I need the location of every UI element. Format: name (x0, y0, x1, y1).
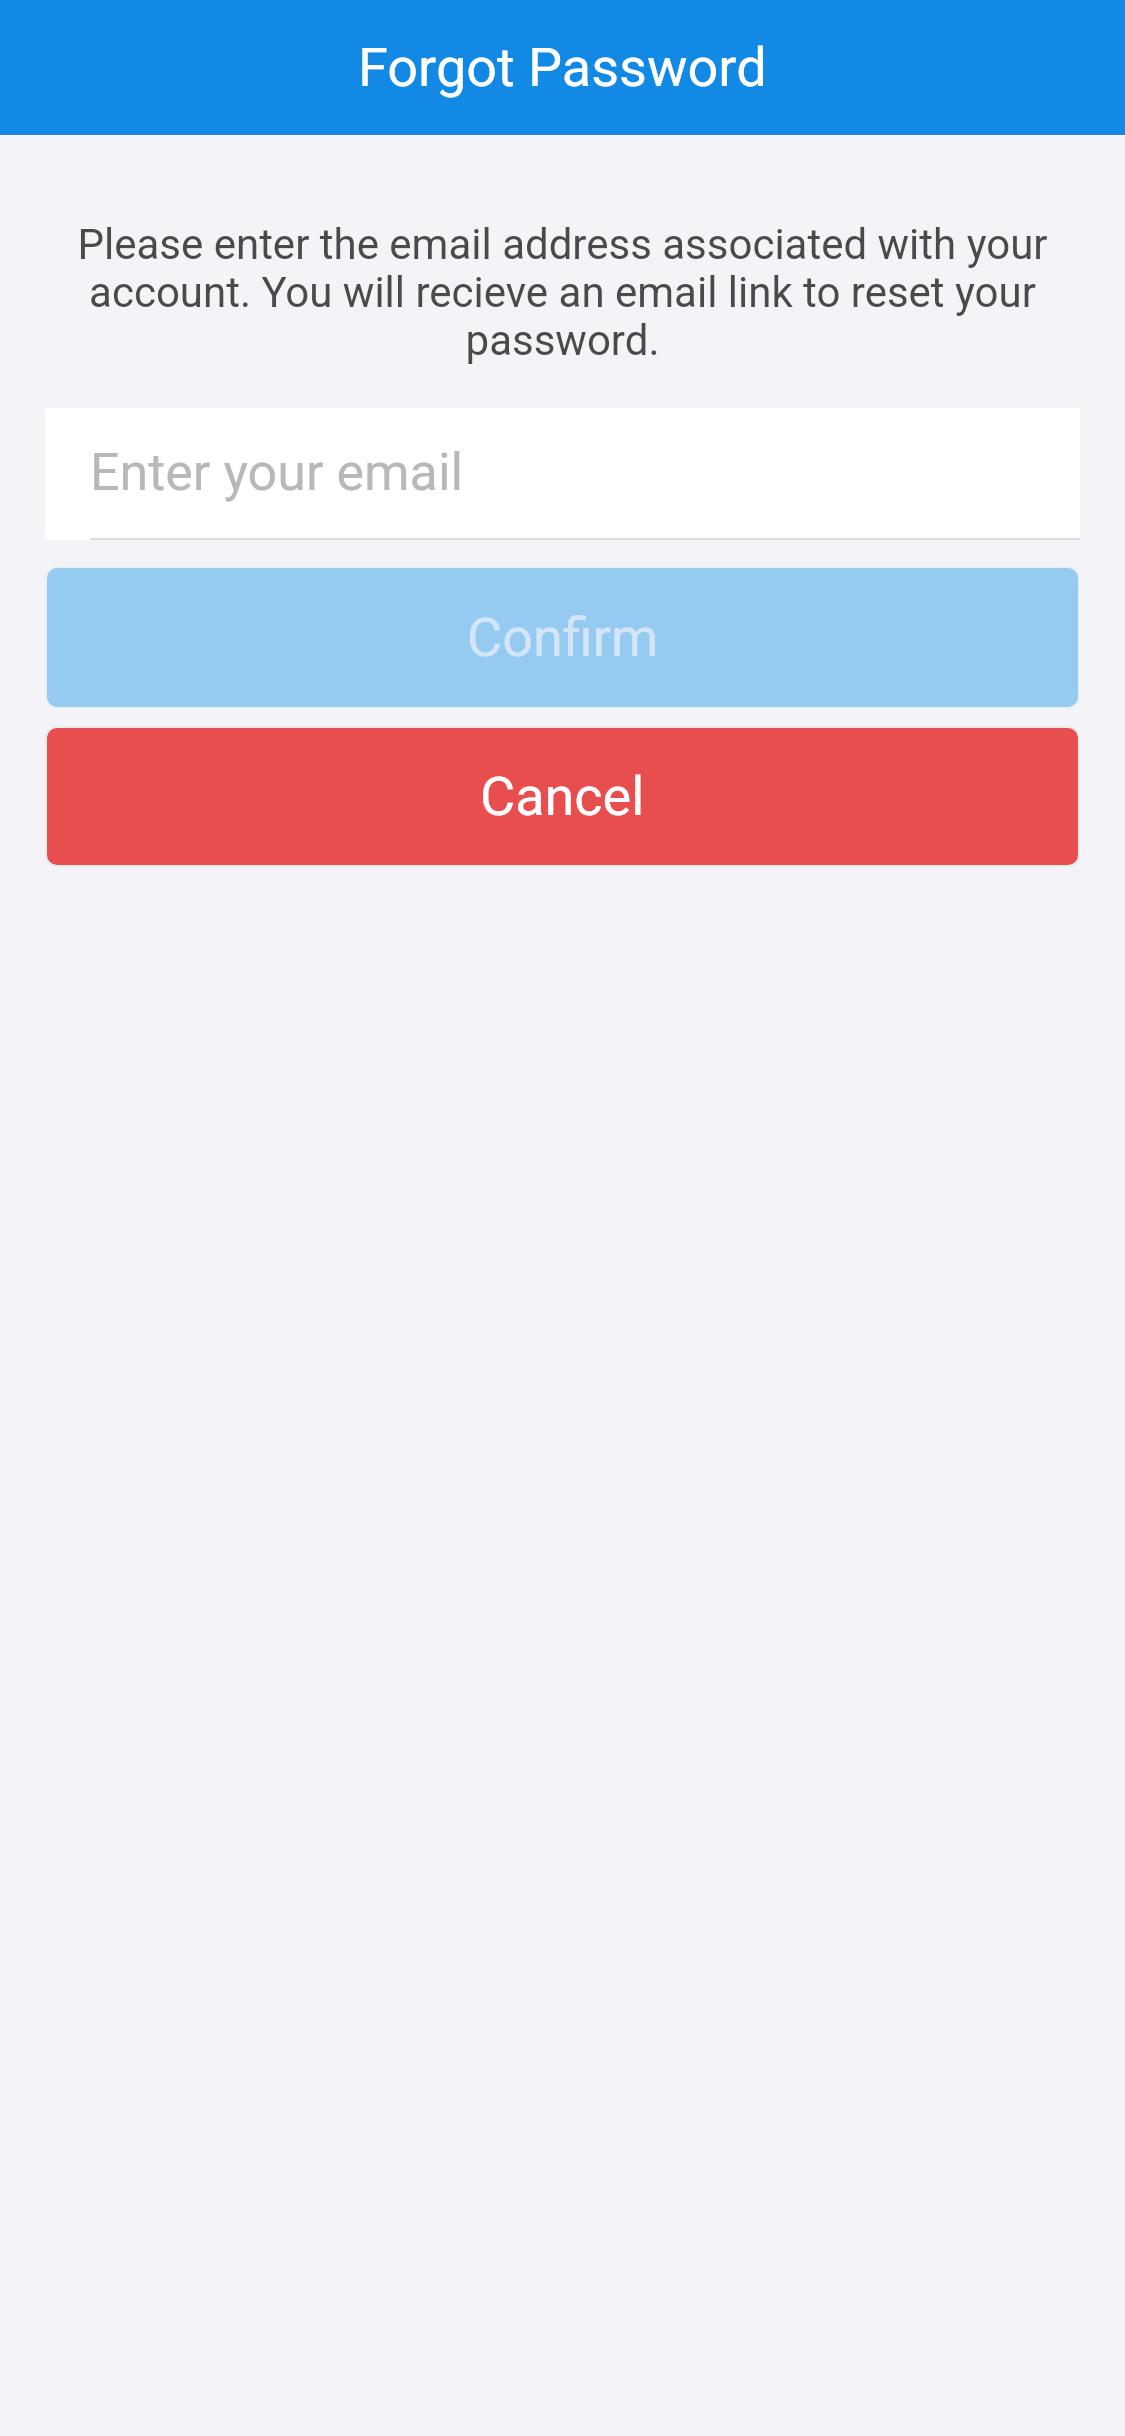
staticText: Please enter the email address associate… (40, 220, 1085, 366)
button[interactable]: Confirm (45, 566, 1080, 709)
staticText: Cancel (480, 765, 645, 828)
staticText: Enter your email (90, 442, 464, 503)
staticText: Confirm (467, 606, 659, 669)
button[interactable]: Enter your email (45, 408, 1080, 540)
staticText: Forgot Password (358, 36, 767, 99)
button[interactable]: Cancel (45, 726, 1080, 867)
